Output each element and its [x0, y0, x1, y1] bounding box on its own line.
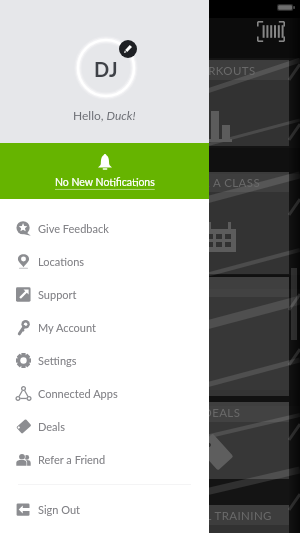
button[interactable]: Give Feedback: [0, 212, 209, 245]
button[interactable]: No New Notifications: [0, 143, 209, 199]
staticText: Deals: [38, 420, 65, 433]
staticText: MY WORKOUTS: [165, 64, 256, 78]
button[interactable]: Deals: [0, 410, 209, 443]
staticText: Refer a Friend: [38, 453, 106, 466]
staticText: DJ: [94, 57, 118, 81]
staticText: Locations: [38, 255, 85, 268]
button[interactable]: My Account: [0, 311, 209, 344]
button[interactable]: Settings: [0, 344, 209, 377]
staticText: Sign Out: [38, 503, 81, 516]
button[interactable]: Edit: [119, 40, 137, 58]
staticText: No New Notifications: [55, 176, 155, 189]
staticText: BOOK A CLASS: [175, 176, 261, 190]
staticText: PERSONAL TRAINING: [150, 509, 272, 523]
staticText: DEALS: [203, 406, 241, 420]
staticText: Settings: [38, 354, 77, 367]
button[interactable]: Locations: [0, 245, 209, 278]
button[interactable]: Sign Out: [0, 493, 209, 526]
button[interactable]: Scan barcode: [257, 21, 285, 42]
staticText: My Account: [38, 321, 96, 334]
button[interactable]: Support: [0, 278, 209, 311]
button[interactable]: Connected Apps: [0, 377, 209, 410]
button[interactable]: Edit profile photo: [75, 37, 137, 99]
staticText: Hello, Duck!: [73, 108, 136, 122]
button[interactable]: Refer a Friend: [0, 443, 209, 476]
staticText: Give Feedback: [38, 222, 109, 235]
staticText: Support: [38, 288, 77, 301]
staticText: Connected Apps: [38, 387, 118, 400]
